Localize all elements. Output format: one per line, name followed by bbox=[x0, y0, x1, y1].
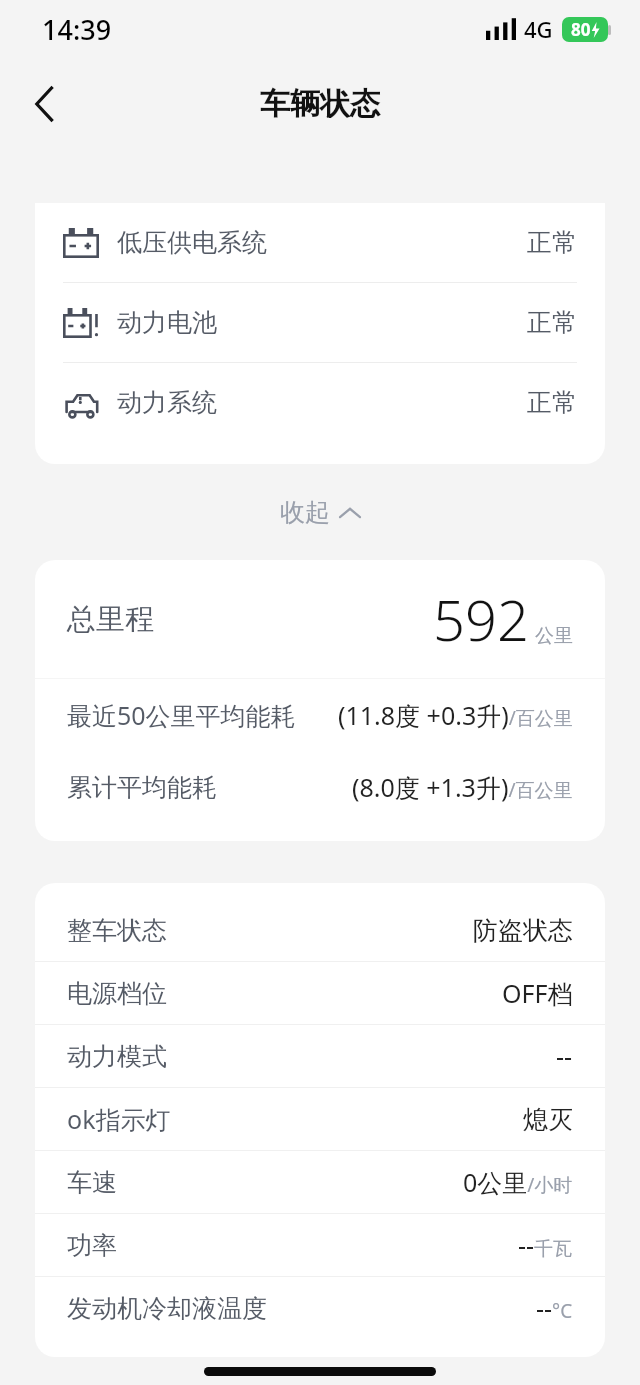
staticText: 正常 bbox=[527, 307, 577, 338]
staticText: --°C bbox=[536, 1291, 573, 1325]
button[interactable]: 电源档位 bbox=[35, 962, 605, 1024]
staticText: 收起 bbox=[280, 497, 330, 528]
button[interactable]: 累计平均能耗 bbox=[35, 751, 605, 823]
button[interactable]: 发动机冷却液温度 bbox=[35, 1277, 605, 1339]
staticText: 低压供电系统 bbox=[117, 227, 267, 258]
staticText: 电源档位 bbox=[67, 978, 167, 1009]
button[interactable]: 功率 bbox=[35, 1214, 605, 1276]
staticText: 动力模式 bbox=[67, 1041, 167, 1072]
staticText: 592 bbox=[433, 581, 529, 657]
staticText: 80 bbox=[571, 18, 591, 41]
button[interactable]: 动力系统 bbox=[35, 363, 605, 442]
staticText: 累计平均能耗 bbox=[67, 772, 217, 803]
staticText: 整车状态 bbox=[67, 915, 167, 946]
staticText: 正常 bbox=[527, 387, 577, 418]
staticText: ok指示灯 bbox=[67, 1102, 171, 1136]
button[interactable]: 最近50公里平均能耗 bbox=[35, 679, 605, 751]
staticText: -- bbox=[556, 1039, 573, 1073]
staticText: 熄灭 bbox=[523, 1104, 573, 1135]
button[interactable]: 低压供电系统 bbox=[35, 203, 605, 282]
staticText: 防盗状态 bbox=[473, 915, 573, 946]
staticText: 正常 bbox=[527, 227, 577, 258]
staticText: 功率 bbox=[67, 1230, 117, 1261]
staticText: 动力电池 bbox=[117, 307, 217, 338]
button[interactable]: 整车状态 bbox=[35, 899, 605, 961]
button[interactable]: ok指示灯 bbox=[35, 1088, 605, 1150]
staticText: 公里 bbox=[535, 624, 573, 648]
staticText: 14:39 bbox=[42, 11, 112, 48]
staticText: 车速 bbox=[67, 1167, 117, 1198]
staticText: 0公里/小时 bbox=[463, 1165, 573, 1199]
staticText: 车辆状态 bbox=[260, 85, 380, 123]
staticText: 发动机冷却液温度 bbox=[67, 1293, 267, 1324]
staticText: OFF档 bbox=[502, 976, 573, 1010]
staticText: 动力系统 bbox=[117, 387, 217, 418]
button[interactable]: 动力模式 bbox=[35, 1025, 605, 1087]
staticText: (8.0度 +1.3升)/百公里 bbox=[352, 770, 573, 804]
button[interactable]: 动力电池 bbox=[35, 283, 605, 362]
button[interactable]: 总里程 bbox=[35, 560, 605, 678]
staticText: --千瓦 bbox=[518, 1228, 573, 1262]
staticText: 总里程 bbox=[67, 601, 154, 638]
staticText: 4G bbox=[524, 14, 553, 44]
button[interactable]: 车速 bbox=[35, 1151, 605, 1213]
button[interactable]: Back bbox=[16, 76, 72, 132]
staticText: (11.8度 +0.3升)/百公里 bbox=[338, 698, 573, 732]
staticText: 最近50公里平均能耗 bbox=[67, 698, 296, 732]
button[interactable]: 收起 bbox=[254, 485, 386, 540]
